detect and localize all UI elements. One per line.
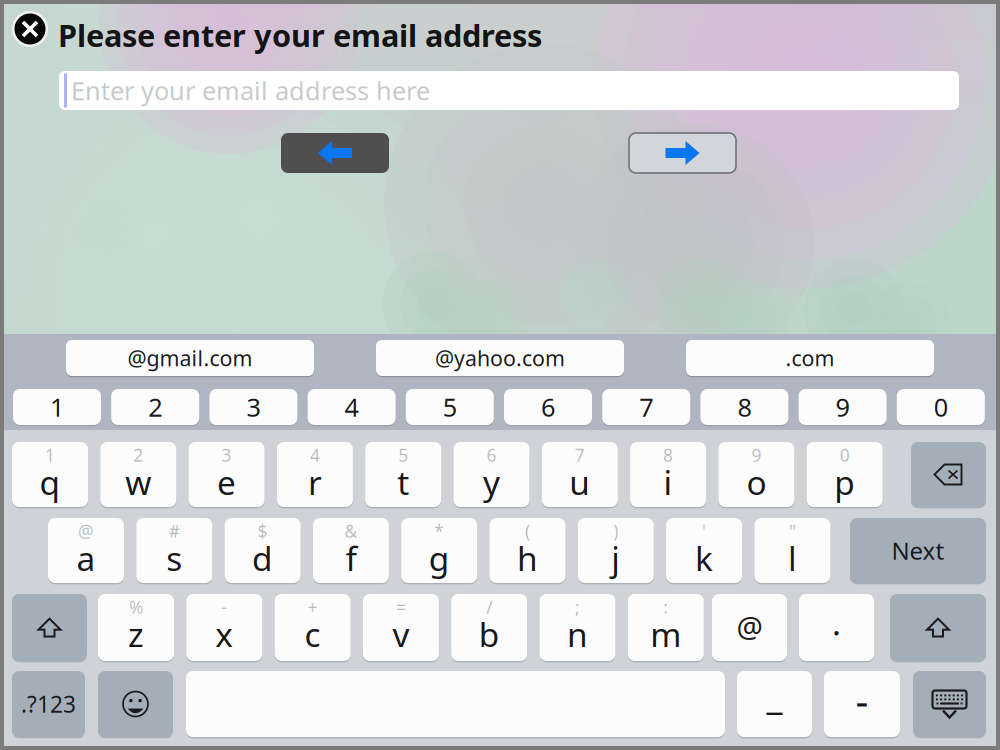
button[interactable]: 7 bbox=[602, 389, 690, 425]
button[interactable]: : bbox=[628, 594, 704, 661]
button[interactable]: 1 bbox=[12, 442, 88, 507]
button[interactable]: @yahoo.com bbox=[376, 340, 624, 376]
staticText: Please enter your email address bbox=[58, 15, 542, 55]
button[interactable]: ( bbox=[489, 518, 565, 583]
button[interactable]: 6 bbox=[504, 389, 592, 425]
staticText: .com bbox=[785, 344, 834, 372]
button[interactable]: .?123 bbox=[12, 671, 85, 737]
staticText: 5 bbox=[443, 390, 457, 424]
staticText: q bbox=[39, 460, 60, 504]
button[interactable]: Hide keyboard bbox=[913, 671, 986, 737]
staticText: v bbox=[392, 612, 409, 656]
button[interactable]: .com bbox=[686, 340, 934, 376]
button[interactable]: * bbox=[401, 518, 477, 583]
staticText: g bbox=[429, 536, 450, 580]
staticText: c bbox=[305, 612, 321, 656]
button[interactable]: + bbox=[275, 594, 351, 661]
button[interactable]: @gmail.com bbox=[66, 340, 314, 376]
button[interactable]: - bbox=[186, 594, 262, 661]
staticText: 7 bbox=[639, 390, 653, 424]
button[interactable]: = bbox=[363, 594, 439, 661]
staticText: 0 bbox=[840, 443, 850, 466]
button[interactable]: 5 bbox=[365, 442, 441, 507]
staticText: ; bbox=[575, 595, 580, 618]
staticText: j bbox=[611, 536, 620, 580]
staticText: - bbox=[855, 673, 868, 726]
staticText: n bbox=[567, 612, 588, 656]
staticText: .?123 bbox=[21, 689, 76, 719]
button[interactable]: 3 bbox=[209, 389, 297, 425]
button[interactable]: - bbox=[824, 671, 900, 737]
button[interactable]: 0 bbox=[807, 442, 883, 507]
button[interactable]: 1 bbox=[13, 389, 101, 425]
staticText: ( bbox=[525, 519, 530, 542]
staticText: @gmail.com bbox=[127, 344, 252, 372]
button[interactable]: 9 bbox=[718, 442, 794, 507]
button[interactable]: Close bbox=[10, 9, 50, 49]
button[interactable]: 5 bbox=[406, 389, 494, 425]
button[interactable]: Shift bbox=[12, 594, 87, 661]
button[interactable]: 3 bbox=[189, 442, 265, 507]
button[interactable]: 6 bbox=[453, 442, 529, 507]
button[interactable]: 7 bbox=[542, 442, 618, 507]
staticText: o bbox=[746, 460, 766, 504]
button[interactable]: 2 bbox=[100, 442, 176, 507]
button[interactable]: 8 bbox=[700, 389, 788, 425]
staticText: r bbox=[308, 460, 322, 504]
button[interactable]: 0 bbox=[897, 389, 985, 425]
staticText: 5 bbox=[398, 443, 408, 466]
staticText: a bbox=[76, 536, 95, 580]
staticText: 9 bbox=[751, 443, 761, 466]
staticText: & bbox=[344, 519, 357, 542]
staticText: f bbox=[345, 536, 356, 580]
button[interactable]: 4 bbox=[308, 389, 396, 425]
staticText: 0 bbox=[934, 390, 948, 424]
staticText: / bbox=[486, 595, 492, 618]
button[interactable]: 9 bbox=[799, 389, 887, 425]
button[interactable]: Previous field bbox=[281, 133, 389, 173]
staticText: z bbox=[128, 612, 144, 656]
button[interactable]: # bbox=[136, 518, 212, 583]
button[interactable]: . bbox=[799, 594, 874, 661]
button[interactable]: _ bbox=[737, 671, 812, 737]
staticText: " bbox=[789, 519, 796, 542]
staticText: ' bbox=[702, 519, 706, 542]
button[interactable]: ) bbox=[578, 518, 654, 583]
button[interactable]: / bbox=[451, 594, 527, 661]
staticText: 8 bbox=[737, 390, 751, 424]
staticText: ) bbox=[613, 519, 618, 542]
staticText: 4 bbox=[310, 443, 320, 466]
button[interactable]: % bbox=[98, 594, 174, 661]
staticText: p bbox=[834, 460, 855, 504]
button[interactable]: 8 bbox=[630, 442, 706, 507]
button[interactable]: Next field bbox=[629, 133, 736, 173]
staticText: 8 bbox=[663, 443, 673, 466]
button[interactable]: 2 bbox=[111, 389, 199, 425]
button[interactable]: 4 bbox=[277, 442, 353, 507]
button[interactable]: @ bbox=[48, 518, 124, 583]
staticText: d bbox=[252, 536, 273, 580]
button[interactable]: Next bbox=[850, 518, 986, 583]
staticText: e bbox=[217, 460, 236, 504]
staticText: 9 bbox=[836, 390, 850, 424]
button[interactable]: " bbox=[754, 518, 830, 583]
button[interactable]: Delete bbox=[911, 442, 986, 507]
button[interactable]: Emoji bbox=[98, 671, 173, 737]
button[interactable]: $ bbox=[225, 518, 301, 583]
staticText: Enter your email address here bbox=[71, 74, 430, 107]
button[interactable]: ; bbox=[539, 594, 615, 661]
button[interactable]: ' bbox=[666, 518, 742, 583]
staticText: @ bbox=[78, 519, 94, 542]
staticText: _ bbox=[766, 671, 782, 719]
staticText: w bbox=[125, 460, 151, 504]
staticText: - bbox=[221, 595, 227, 618]
staticText: 1 bbox=[50, 390, 64, 424]
staticText: i bbox=[664, 460, 673, 504]
button[interactable]: @ bbox=[712, 594, 787, 661]
staticText: l bbox=[788, 536, 797, 580]
button[interactable]: & bbox=[313, 518, 389, 583]
staticText: b bbox=[479, 612, 500, 656]
button[interactable]: Shift bbox=[890, 594, 986, 661]
staticText: 1 bbox=[45, 443, 55, 466]
